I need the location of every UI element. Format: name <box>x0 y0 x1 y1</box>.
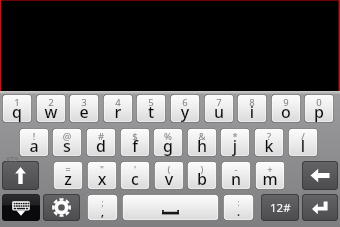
staticText: - <box>221 163 251 176</box>
staticText: d <box>86 135 116 157</box>
staticText: % <box>153 130 183 143</box>
staticText: l <box>288 135 318 157</box>
staticText: 8 <box>237 96 267 109</box>
staticText: 12# <box>270 200 291 216</box>
staticText: 4 <box>103 96 133 109</box>
button[interactable]: Backspace <box>302 161 338 190</box>
button[interactable]: Shift <box>2 161 39 190</box>
button[interactable]: % <box>153 128 183 157</box>
button[interactable]: @ <box>52 128 82 157</box>
staticText: . <box>223 202 254 220</box>
staticText: o <box>271 101 301 123</box>
staticText: w <box>36 101 66 123</box>
staticText: 6 <box>170 96 200 109</box>
staticText: x <box>87 168 117 190</box>
button[interactable]: 8 <box>237 94 267 123</box>
button[interactable]: Hide keyboard <box>2 194 40 221</box>
button[interactable]: 4 <box>103 94 133 123</box>
staticText: m <box>255 168 285 190</box>
button[interactable]: Settings <box>43 194 80 221</box>
button[interactable]: = <box>53 161 83 190</box>
staticText: z <box>53 168 83 190</box>
button[interactable]: 1 <box>2 94 32 123</box>
button[interactable]: + <box>255 161 285 190</box>
staticText: ; <box>87 197 118 208</box>
button[interactable]: 7 <box>204 94 234 123</box>
staticText: u <box>204 101 234 123</box>
staticText: 1 <box>2 96 32 109</box>
button[interactable]: / <box>288 128 318 157</box>
button[interactable]: Space <box>122 194 219 221</box>
staticText: s <box>52 135 82 157</box>
staticText: j <box>220 135 250 157</box>
staticText: g <box>153 135 183 157</box>
staticText: * <box>220 130 250 143</box>
staticText: e <box>69 101 99 123</box>
button[interactable]: 3 <box>69 94 99 123</box>
staticText: p <box>304 101 334 123</box>
staticText: 9 <box>271 96 301 109</box>
button[interactable]: Numbers and symbols <box>261 194 299 221</box>
staticText: " <box>87 163 117 176</box>
staticText: 0 <box>304 96 334 109</box>
staticText: = <box>53 163 83 176</box>
staticText: / <box>288 130 318 143</box>
staticText: n <box>221 168 251 190</box>
button[interactable]: 5 <box>136 94 166 123</box>
staticText: c <box>120 168 150 190</box>
staticText: b <box>187 168 217 190</box>
button[interactable]: $ <box>120 128 150 157</box>
button[interactable]: ? <box>254 128 284 157</box>
staticText: XT9 <box>6 155 18 165</box>
staticText: i <box>237 101 267 123</box>
staticText: q <box>2 101 32 123</box>
staticText: ' <box>120 163 150 176</box>
button[interactable]: ) <box>187 161 217 190</box>
button[interactable]: - <box>221 161 251 190</box>
button[interactable]: # <box>86 128 116 157</box>
button[interactable]: ' <box>120 161 150 190</box>
staticText: ( <box>154 163 184 176</box>
button[interactable]: 9 <box>271 94 301 123</box>
button[interactable]: : <box>223 194 254 221</box>
button[interactable]: " <box>87 161 117 190</box>
staticText: t <box>136 101 166 123</box>
staticText: 5 <box>136 96 166 109</box>
button[interactable]: 2 <box>36 94 66 123</box>
staticText: k <box>254 135 284 157</box>
staticText: @ <box>52 130 82 143</box>
staticText: r <box>103 101 133 123</box>
staticText: ! <box>19 130 49 143</box>
button[interactable]: Enter <box>302 194 338 221</box>
button[interactable]: ; <box>87 194 118 221</box>
button[interactable]: 6 <box>170 94 200 123</box>
staticText: & <box>187 130 217 143</box>
staticText: + <box>255 163 285 176</box>
staticText: v <box>154 168 184 190</box>
staticText: y <box>170 101 200 123</box>
staticText: ? <box>254 130 284 143</box>
staticText: f <box>120 135 150 157</box>
button[interactable]: ( <box>154 161 184 190</box>
staticText: 2 <box>36 96 66 109</box>
staticText: # <box>86 130 116 143</box>
button[interactable]: ! <box>19 128 49 157</box>
button[interactable]: 0 <box>304 94 334 123</box>
staticText: ) <box>187 163 217 176</box>
staticText: : <box>223 197 254 208</box>
staticText: 7 <box>204 96 234 109</box>
staticText: $ <box>120 130 150 143</box>
staticText: h <box>187 135 217 157</box>
staticText: a <box>19 135 49 157</box>
staticText: 3 <box>69 96 99 109</box>
button[interactable]: * <box>220 128 250 157</box>
button[interactable]: & <box>187 128 217 157</box>
staticText: , <box>87 202 118 220</box>
